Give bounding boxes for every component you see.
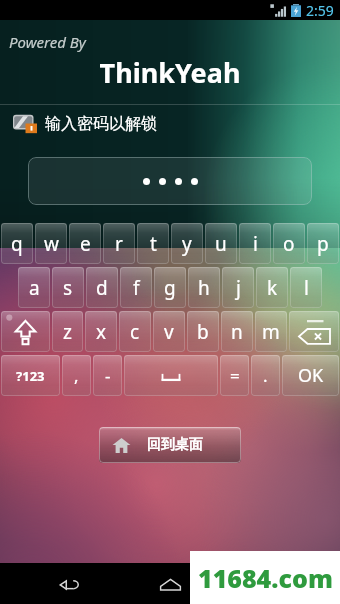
button[interactable]: Home xyxy=(151,565,189,603)
staticText: r xyxy=(115,231,123,257)
button[interactable]: q xyxy=(1,223,33,264)
button[interactable]: o xyxy=(273,223,305,264)
button[interactable]: h xyxy=(188,267,220,308)
button[interactable]: d xyxy=(86,267,118,308)
button[interactable]: s xyxy=(52,267,84,308)
staticText: . xyxy=(263,364,268,387)
staticText: e xyxy=(80,231,91,257)
button[interactable]: y xyxy=(171,223,203,264)
staticText: f xyxy=(133,275,140,301)
button[interactable]: e xyxy=(69,223,101,264)
button[interactable]: , xyxy=(62,355,91,396)
button[interactable]: w xyxy=(35,223,67,264)
button[interactable]: g xyxy=(154,267,186,308)
button[interactable]: . xyxy=(251,355,280,396)
button[interactable]: c xyxy=(119,311,151,352)
staticText: v xyxy=(164,319,174,345)
staticText: - xyxy=(105,364,111,387)
button[interactable]: = xyxy=(220,355,249,396)
staticText: n xyxy=(231,319,243,345)
staticText: k xyxy=(267,275,278,301)
button[interactable]: Space xyxy=(124,355,218,396)
staticText: l xyxy=(304,275,309,301)
staticText: OK xyxy=(298,363,324,388)
button[interactable]: k xyxy=(256,267,288,308)
staticText: 2:59 xyxy=(306,1,334,20)
staticText: h xyxy=(198,275,210,301)
button[interactable]: n xyxy=(221,311,253,352)
button[interactable]: r xyxy=(103,223,135,264)
staticText: u xyxy=(215,231,227,257)
button[interactable]: 回到桌面 xyxy=(99,427,241,463)
staticText: z xyxy=(63,319,72,345)
button[interactable]: i xyxy=(239,223,271,264)
staticText: 11684.com xyxy=(198,561,333,595)
button[interactable] xyxy=(28,157,312,205)
staticText: Powered By xyxy=(9,32,86,52)
staticText: b xyxy=(197,319,209,345)
staticText: i xyxy=(253,231,258,257)
button[interactable]: Back xyxy=(50,565,88,603)
button[interactable]: u xyxy=(205,223,237,264)
staticText: x xyxy=(96,319,107,345)
button[interactable]: - xyxy=(93,355,122,396)
button[interactable]: a xyxy=(18,267,50,308)
staticText: g xyxy=(164,275,176,301)
staticText: d xyxy=(96,275,108,301)
staticText: j xyxy=(236,275,241,301)
staticText: = xyxy=(230,364,240,387)
staticText: w xyxy=(44,231,59,257)
button[interactable]: Delete xyxy=(289,311,339,352)
button[interactable]: j xyxy=(222,267,254,308)
staticText: ThinkYeah xyxy=(0,54,340,91)
button[interactable]: Recent apps xyxy=(254,565,292,603)
button[interactable]: f xyxy=(120,267,152,308)
staticText: q xyxy=(11,231,23,257)
button[interactable]: v xyxy=(153,311,185,352)
staticText: t xyxy=(150,231,157,257)
staticText: , xyxy=(74,364,79,387)
button[interactable]: b xyxy=(187,311,219,352)
staticText: 回到桌面 xyxy=(147,436,203,454)
staticText: m xyxy=(262,319,280,345)
button[interactable]: OK xyxy=(282,355,339,396)
button[interactable]: 输入密码以解锁 xyxy=(13,113,340,134)
staticText: p xyxy=(317,231,329,257)
staticText: c xyxy=(130,319,140,345)
staticText: s xyxy=(63,275,73,301)
button[interactable]: l xyxy=(290,267,322,308)
button[interactable]: z xyxy=(52,311,83,352)
button[interactable]: ?123 xyxy=(1,355,60,396)
button[interactable]: x xyxy=(85,311,117,352)
button[interactable]: p xyxy=(307,223,339,264)
staticText: y xyxy=(182,231,192,257)
staticText: o xyxy=(283,231,295,257)
staticText: ?123 xyxy=(16,367,45,385)
staticText: a xyxy=(29,275,40,301)
button[interactable]: m xyxy=(255,311,287,352)
staticText: 输入密码以解锁 xyxy=(45,114,157,134)
button[interactable]: Shift xyxy=(1,311,50,352)
button[interactable]: t xyxy=(137,223,169,264)
